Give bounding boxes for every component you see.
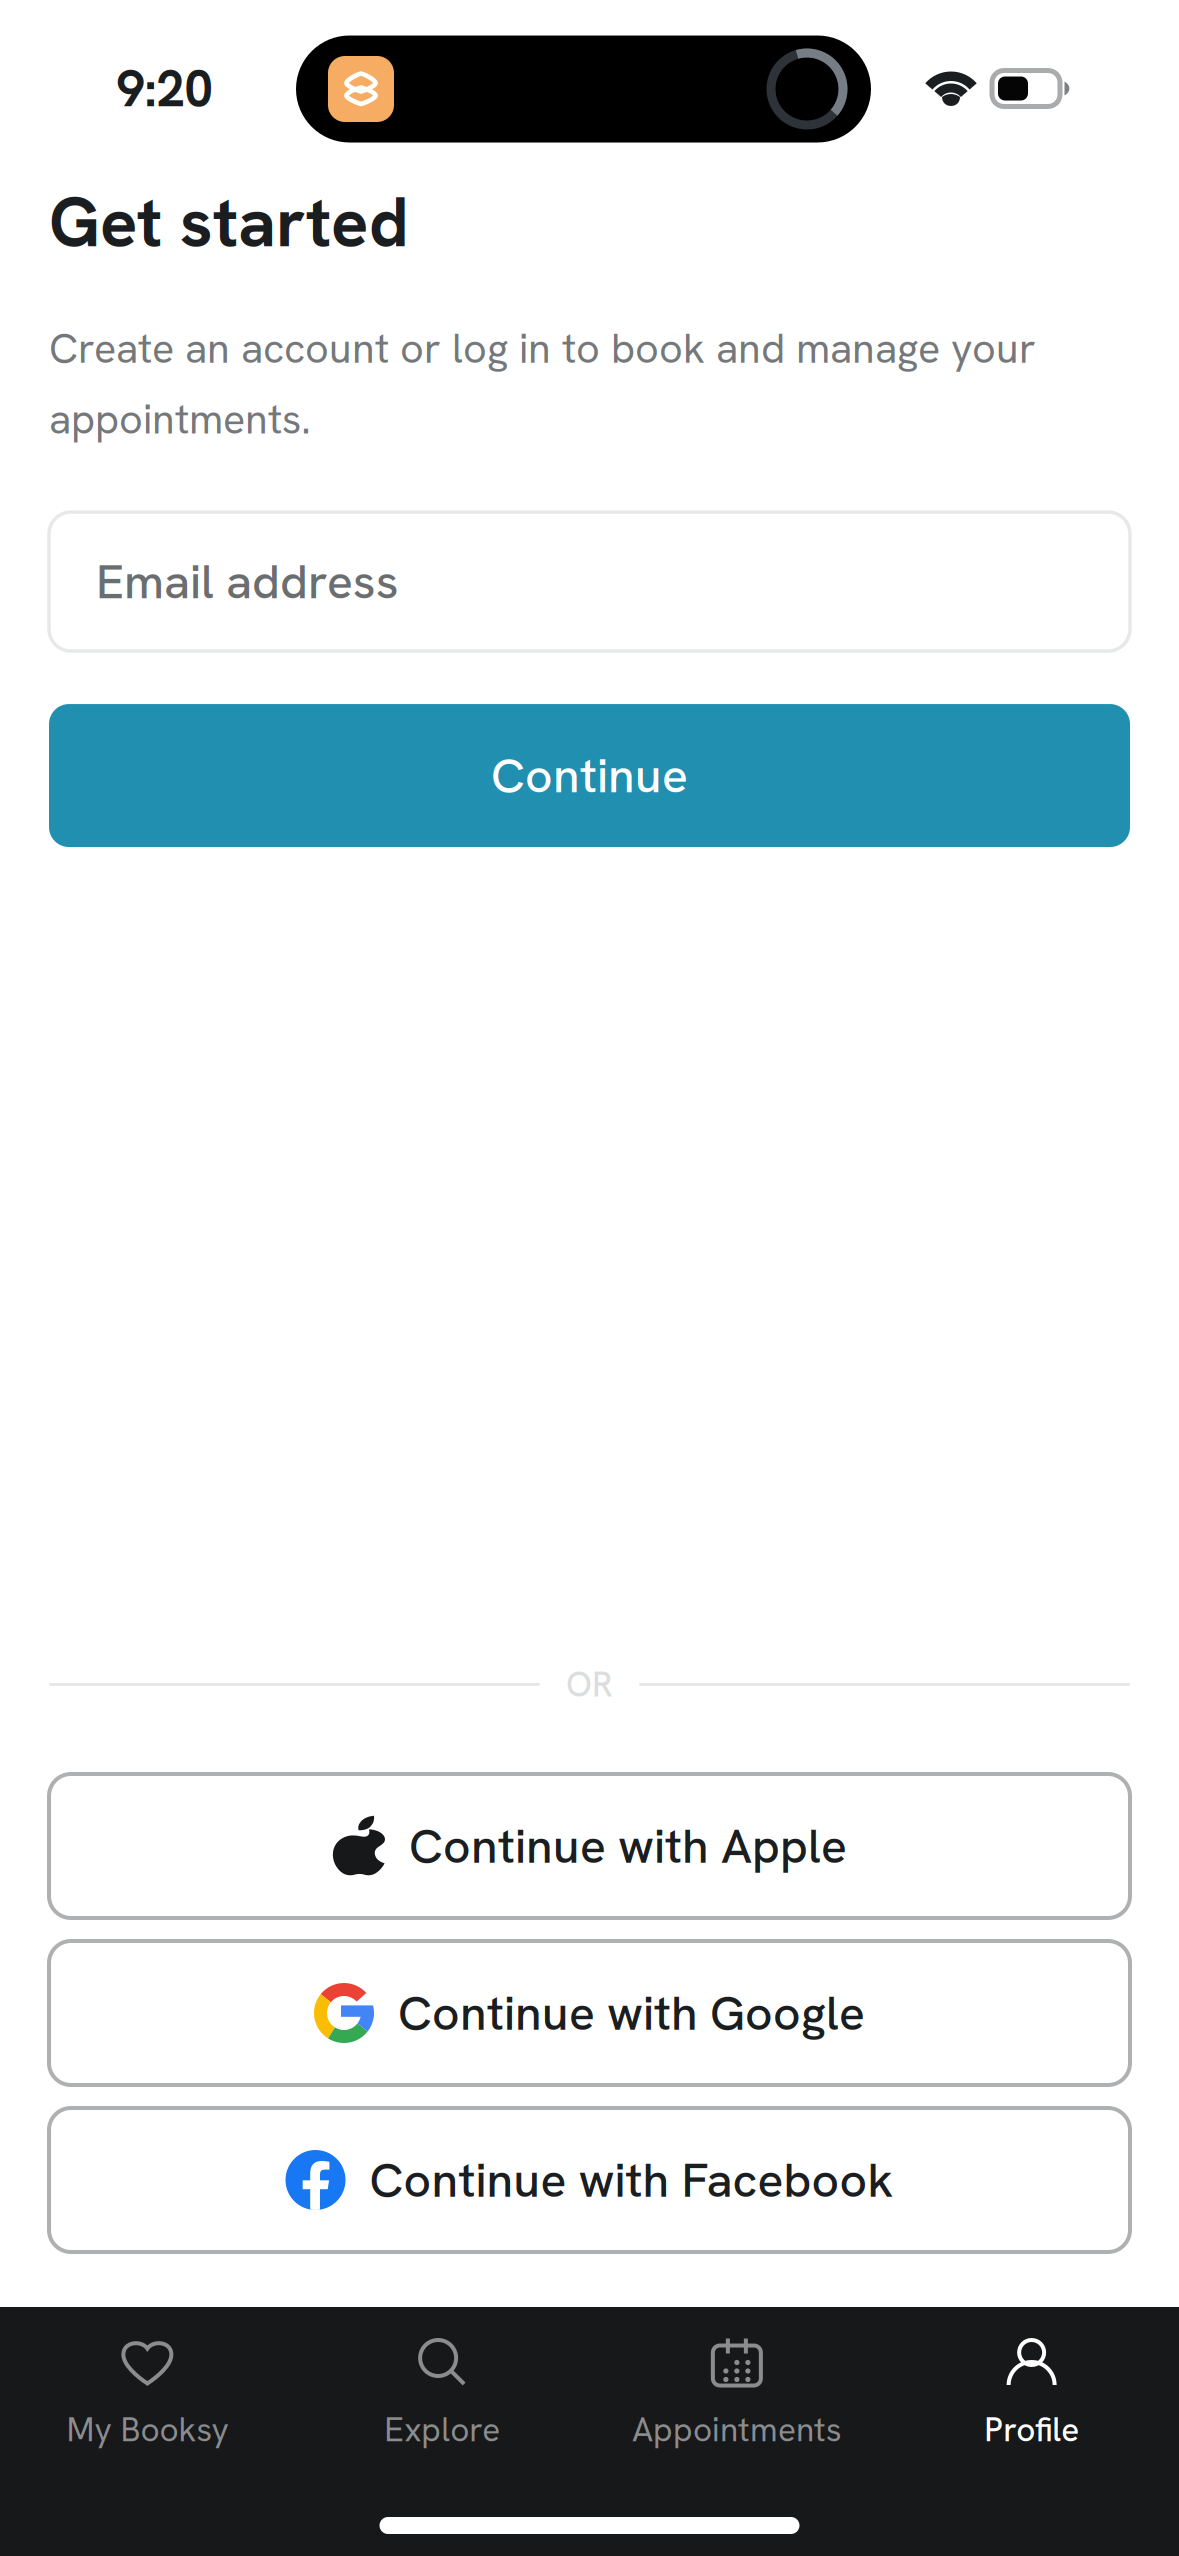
staticText: Email address [96, 550, 399, 613]
staticText: Continue [491, 744, 688, 807]
staticText: 9:20 [116, 55, 212, 121]
staticText: Continue with Apple [409, 1815, 847, 1877]
button[interactable]: Profile [884, 2307, 1179, 2451]
button[interactable]: Appointments [589, 2307, 884, 2451]
staticText: Appointments [632, 2408, 842, 2451]
button[interactable]: Continue with Facebook [49, 2108, 1130, 2252]
staticText: Continue with Facebook [369, 2149, 893, 2211]
button[interactable]: Continue with Apple [49, 1774, 1130, 1918]
staticText: My Booksy [66, 2408, 228, 2451]
staticText: OR [566, 1662, 613, 1707]
staticText: Continue with Google [398, 1982, 865, 2044]
button[interactable]: Email address [49, 512, 1130, 651]
staticText: Profile [984, 2408, 1079, 2451]
button[interactable]: Continue [49, 704, 1130, 847]
staticText: Create an account or log in to book and … [49, 321, 1036, 446]
button[interactable]: My Booksy [0, 2307, 295, 2451]
staticText: Explore [384, 2408, 500, 2451]
button[interactable]: Explore [295, 2307, 590, 2451]
button[interactable]: Continue with Google [49, 1941, 1130, 2085]
staticText: Get started [49, 177, 409, 267]
